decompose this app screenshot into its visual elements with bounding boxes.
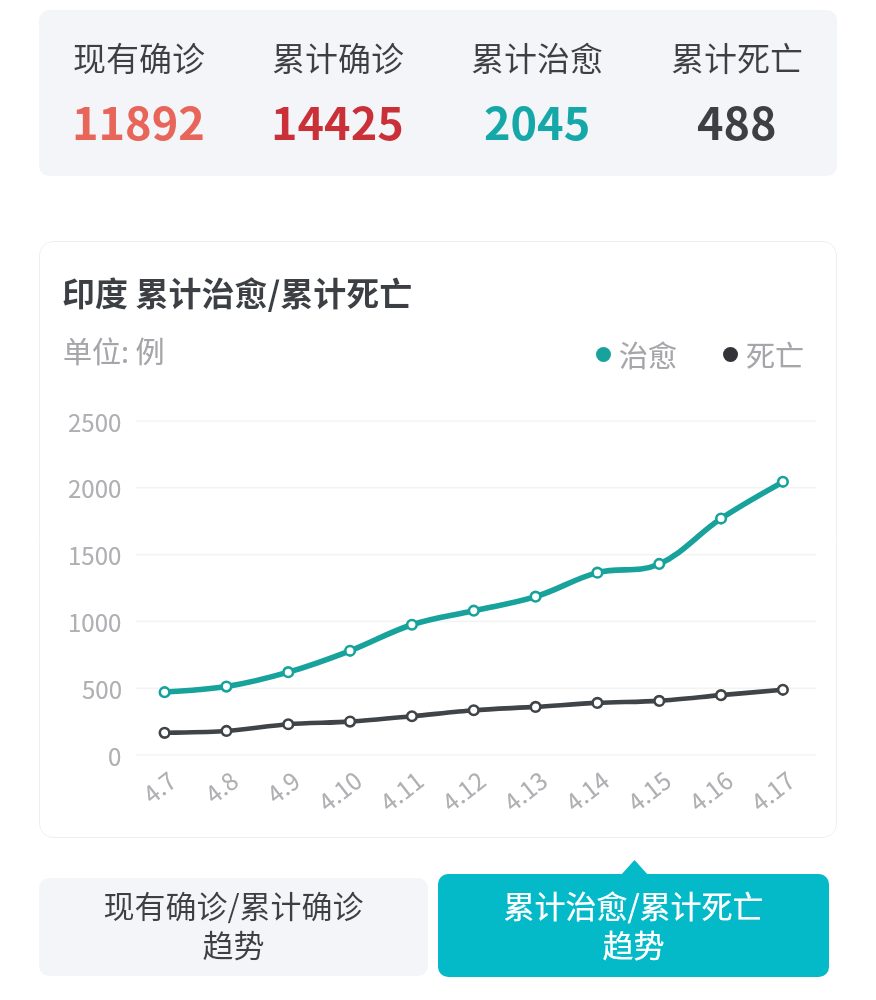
staticText: 14425 — [271, 88, 404, 153]
button[interactable]: 累计治愈/累计死亡 趋势 — [438, 874, 829, 977]
staticText: 现有确诊/累计确诊 趋势 — [103, 882, 364, 966]
staticText: 累计死亡 — [671, 33, 803, 81]
staticText: 488 — [697, 88, 777, 153]
staticText: 印度 累计治愈/累计死亡 — [62, 268, 413, 316]
button[interactable]: 累计治愈 — [437, 10, 637, 176]
staticText: 单位: 例 — [63, 329, 165, 371]
staticText: 死亡 — [746, 333, 805, 375]
button[interactable]: 现有确诊 — [39, 10, 238, 176]
staticText: 11892 — [72, 88, 205, 153]
button[interactable]: 累计死亡 — [637, 10, 837, 176]
staticText: 累计治愈 — [471, 33, 603, 81]
staticText: 治愈 — [619, 333, 678, 375]
staticText: 累计确诊 — [272, 33, 404, 81]
staticText: 2045 — [484, 88, 591, 153]
staticText: 累计治愈/累计死亡 趋势 — [503, 882, 764, 966]
staticText: 现有确诊 — [73, 33, 205, 81]
button[interactable]: 现有确诊/累计确诊 趋势 — [39, 878, 428, 976]
button[interactable]: 累计确诊 — [238, 10, 437, 176]
